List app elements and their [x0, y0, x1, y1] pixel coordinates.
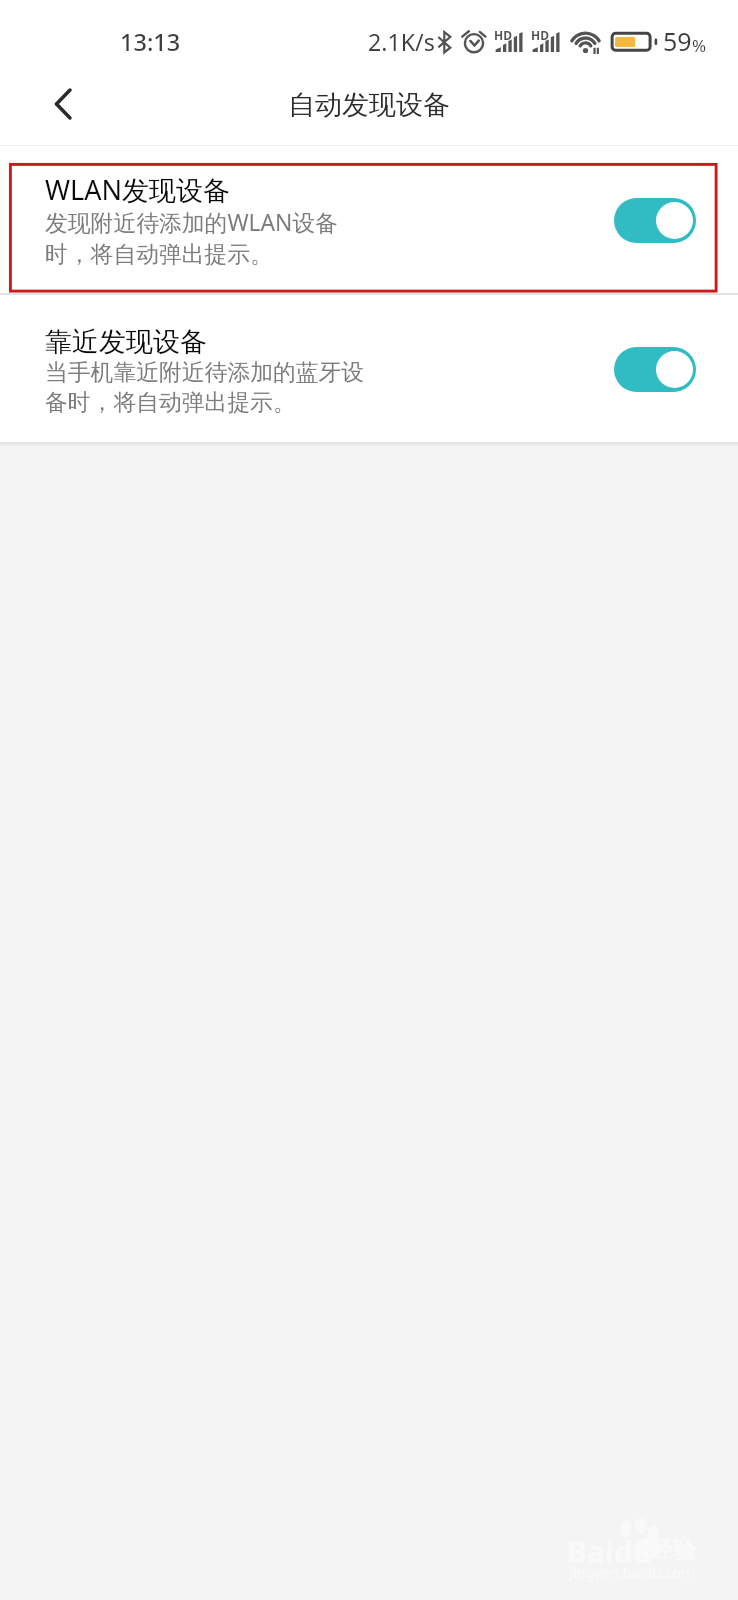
staticText: % [692, 34, 707, 57]
staticText: 自动发现设备 [0, 88, 738, 122]
staticText: 时，将自动弹出提示。 [45, 240, 273, 269]
staticText: 13:13 [120, 26, 181, 58]
button[interactable]: Toggle [614, 198, 696, 243]
button[interactable]: Back [26, 70, 98, 142]
staticText: HD [494, 27, 512, 43]
staticText: 2.1K/s [368, 26, 435, 58]
button[interactable]: 靠近发现设备 [0, 295, 738, 442]
staticText: 当手机靠近附近待添加的蓝牙设 [45, 358, 365, 387]
staticText: HD [531, 27, 549, 43]
button[interactable]: Toggle [614, 347, 696, 392]
staticText: 59 [663, 24, 692, 58]
staticText: 备时，将自动弹出提示。 [45, 388, 296, 417]
staticText: WLAN发现设备 [45, 171, 231, 208]
button[interactable]: WLAN发现设备 [0, 146, 738, 293]
staticText: 靠近发现设备 [45, 325, 207, 359]
staticText: 发现附近待添加的WLAN设备 [45, 207, 339, 238]
